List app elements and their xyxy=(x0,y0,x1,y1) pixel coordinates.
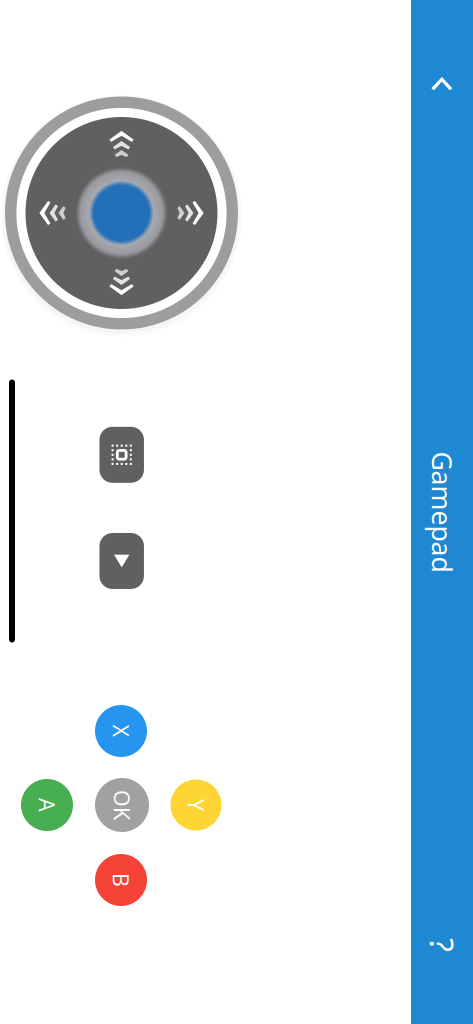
staticText: X xyxy=(114,717,127,745)
button[interactable]: Directional pad xyxy=(5,96,238,329)
staticText: OK xyxy=(107,791,137,819)
button[interactable]: A xyxy=(21,779,73,831)
staticText: Y xyxy=(190,791,202,819)
button[interactable]: Select xyxy=(99,427,144,483)
staticText: ? xyxy=(435,924,449,966)
button[interactable]: OK xyxy=(95,778,149,832)
button[interactable]: X xyxy=(95,705,147,757)
staticText: B xyxy=(114,866,128,894)
staticText: A xyxy=(40,791,54,819)
button[interactable]: Menu xyxy=(99,533,144,589)
button[interactable]: Help xyxy=(411,895,473,995)
button[interactable]: B xyxy=(95,854,147,906)
staticText: Gamepad xyxy=(381,494,473,530)
button[interactable]: Collapse xyxy=(411,29,473,139)
button[interactable]: Y xyxy=(170,779,221,830)
